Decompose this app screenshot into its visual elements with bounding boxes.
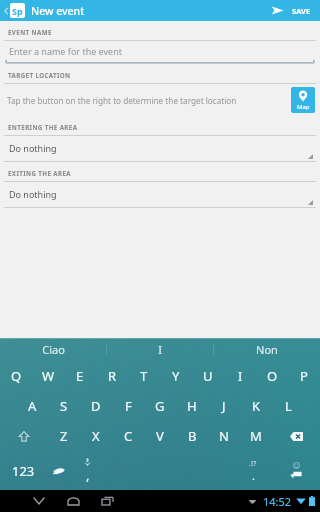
staticText: N bbox=[219, 427, 229, 445]
staticText: M bbox=[250, 427, 262, 445]
staticText: 14:52 bbox=[263, 494, 292, 509]
button[interactable]: Y bbox=[160, 361, 192, 391]
staticText: 123 bbox=[12, 462, 35, 480]
button[interactable]: H bbox=[176, 391, 208, 421]
button[interactable]: A bbox=[16, 391, 48, 421]
button[interactable]: C bbox=[112, 421, 144, 451]
button[interactable]: W bbox=[32, 361, 64, 391]
button[interactable]: Back bbox=[28, 490, 50, 512]
staticText: G bbox=[155, 397, 165, 415]
button[interactable]: P bbox=[288, 361, 320, 391]
staticText: Non bbox=[256, 342, 278, 357]
button[interactable]: Recent apps bbox=[96, 490, 118, 512]
staticText: Y bbox=[172, 367, 180, 385]
button[interactable]: L bbox=[272, 391, 304, 421]
button[interactable]: 123 bbox=[0, 451, 46, 490]
staticText: New event bbox=[31, 4, 85, 18]
button[interactable]: E bbox=[64, 361, 96, 391]
staticText: U bbox=[203, 367, 213, 385]
button[interactable]: O bbox=[256, 361, 288, 391]
button[interactable]: Do nothing bbox=[0, 136, 320, 162]
staticText: TARGET LOCATION bbox=[8, 71, 71, 79]
button[interactable]: Q bbox=[0, 361, 32, 391]
staticText: Ciao bbox=[42, 342, 65, 357]
button[interactable]: Ciao bbox=[0, 338, 106, 361]
button[interactable]: I bbox=[107, 338, 213, 361]
button[interactable]: Home bbox=[62, 490, 84, 512]
button[interactable]: K bbox=[240, 391, 272, 421]
staticText: R bbox=[108, 367, 117, 385]
staticText: X bbox=[92, 427, 100, 445]
button[interactable]: Non bbox=[214, 338, 320, 361]
staticText: V bbox=[156, 427, 164, 445]
staticText: Enter a name for the event bbox=[9, 45, 122, 57]
staticText: EVENT NAME bbox=[8, 28, 52, 36]
staticText: .!? bbox=[249, 458, 257, 468]
staticText: L bbox=[285, 397, 292, 415]
button[interactable]: Shift bbox=[0, 421, 48, 451]
staticText: Do nothing bbox=[9, 142, 57, 154]
staticText: E bbox=[76, 367, 84, 385]
button[interactable]: M bbox=[240, 421, 272, 451]
staticText: H bbox=[187, 397, 197, 415]
other: Navigate up bbox=[3, 4, 9, 18]
button[interactable]: , bbox=[72, 451, 103, 490]
staticText: W bbox=[42, 367, 55, 385]
staticText: S bbox=[60, 397, 68, 415]
button[interactable]: U bbox=[192, 361, 224, 391]
staticText: J bbox=[222, 397, 226, 415]
button[interactable]: N bbox=[208, 421, 240, 451]
staticText: T bbox=[140, 367, 148, 385]
staticText: SAVE bbox=[292, 6, 311, 16]
button[interactable]: G bbox=[144, 391, 176, 421]
staticText: , bbox=[86, 466, 90, 484]
staticText: B bbox=[188, 427, 197, 445]
staticText: Z bbox=[60, 427, 68, 445]
button[interactable]: B bbox=[176, 421, 208, 451]
button[interactable]: Z bbox=[48, 421, 80, 451]
button[interactable]: S bbox=[48, 391, 80, 421]
button[interactable]: J bbox=[208, 391, 240, 421]
button[interactable]: Pick location on map bbox=[291, 87, 315, 113]
button[interactable]: Enter bbox=[271, 451, 320, 490]
button[interactable]: Keyboard bbox=[243, 490, 261, 512]
staticText: Tap the button on the right to determine… bbox=[7, 95, 291, 106]
staticText: A bbox=[28, 397, 37, 415]
button[interactable]: T bbox=[128, 361, 160, 391]
button[interactable]: X bbox=[80, 421, 112, 451]
button[interactable]: V bbox=[144, 421, 176, 451]
staticText: D bbox=[91, 397, 101, 415]
button[interactable]: .!? bbox=[234, 451, 271, 490]
staticText: O bbox=[267, 367, 278, 385]
staticText: I bbox=[238, 367, 243, 385]
staticText: Q bbox=[11, 367, 22, 385]
staticText: P bbox=[300, 367, 308, 385]
staticText: C bbox=[124, 427, 133, 445]
button[interactable]: Send bbox=[266, 0, 316, 21]
button[interactable]: Do nothing bbox=[0, 182, 320, 208]
button[interactable]: Enter a name for the event bbox=[0, 41, 320, 64]
staticText: Sp bbox=[12, 5, 23, 17]
staticText: F bbox=[125, 397, 132, 415]
other: Send bbox=[271, 4, 284, 17]
staticText: I bbox=[158, 342, 162, 357]
button[interactable]: Backspace bbox=[272, 421, 320, 451]
staticText: Map bbox=[297, 103, 310, 111]
button[interactable]: I bbox=[224, 361, 256, 391]
staticText: EXITING THE AREA bbox=[8, 169, 71, 177]
staticText: K bbox=[252, 397, 261, 415]
staticText: . bbox=[252, 468, 255, 483]
staticText: ENTERING THE AREA bbox=[8, 123, 78, 131]
button[interactable]: R bbox=[96, 361, 128, 391]
button[interactable]: Gesture typing bbox=[46, 451, 72, 490]
staticText: Do nothing bbox=[9, 188, 57, 200]
button[interactable]: D bbox=[80, 391, 112, 421]
button[interactable]: F bbox=[112, 391, 144, 421]
